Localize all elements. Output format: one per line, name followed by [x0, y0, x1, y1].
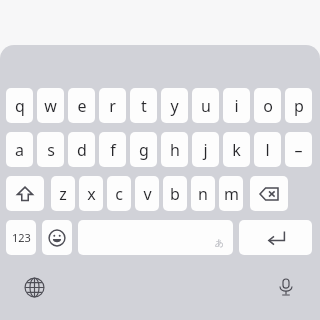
staticText: b	[170, 183, 180, 205]
button[interactable]: i	[223, 88, 250, 123]
button[interactable]: t	[130, 88, 157, 123]
button[interactable]: –	[285, 132, 312, 167]
staticText: g	[139, 139, 149, 161]
staticText: f	[110, 139, 116, 161]
button[interactable]: Backspace	[250, 176, 288, 211]
staticText: q	[15, 95, 25, 117]
button[interactable]: e	[68, 88, 95, 123]
staticText: m	[224, 183, 239, 205]
staticText: n	[198, 183, 208, 205]
button[interactable]: z	[51, 176, 75, 211]
button[interactable]: d	[68, 132, 95, 167]
staticText: z	[59, 183, 67, 205]
button[interactable]: y	[161, 88, 188, 123]
button[interactable]: Emoji	[42, 220, 72, 255]
button[interactable]: v	[135, 176, 159, 211]
button[interactable]: Voice input	[273, 274, 299, 300]
button[interactable]: k	[223, 132, 250, 167]
staticText: i	[234, 95, 239, 117]
button[interactable]: r	[99, 88, 126, 123]
button[interactable]: w	[37, 88, 64, 123]
staticText: o	[263, 95, 273, 117]
staticText: j	[203, 139, 208, 161]
staticText: v	[143, 183, 152, 205]
button[interactable]: o	[254, 88, 281, 123]
button[interactable]: q	[6, 88, 33, 123]
staticText: t	[141, 95, 147, 117]
button[interactable]: u	[192, 88, 219, 123]
staticText: u	[201, 95, 211, 117]
button[interactable]: m	[219, 176, 243, 211]
staticText: l	[265, 139, 270, 161]
staticText: w	[44, 95, 57, 117]
staticText: x	[87, 183, 96, 205]
button[interactable]: a	[6, 132, 33, 167]
staticText: r	[109, 95, 116, 117]
button[interactable]: h	[161, 132, 188, 167]
button[interactable]: あ	[78, 220, 233, 255]
staticText: d	[77, 139, 87, 161]
button[interactable]: Shift	[6, 176, 44, 211]
button[interactable]: n	[191, 176, 215, 211]
staticText: 123	[12, 230, 31, 245]
button[interactable]: b	[163, 176, 187, 211]
staticText: a	[15, 139, 24, 161]
staticText: y	[170, 95, 179, 117]
button[interactable]: g	[130, 132, 157, 167]
staticText: あ	[215, 237, 225, 248]
staticText: e	[77, 95, 87, 117]
button[interactable]: c	[107, 176, 131, 211]
button[interactable]: Enter	[239, 220, 312, 255]
staticText: k	[232, 139, 241, 161]
button[interactable]: s	[37, 132, 64, 167]
button[interactable]: Change language	[21, 274, 47, 300]
staticText: h	[170, 139, 180, 161]
staticText: p	[294, 95, 304, 117]
button[interactable]: x	[79, 176, 103, 211]
staticText: –	[294, 139, 303, 161]
staticText: c	[115, 183, 123, 205]
button[interactable]: l	[254, 132, 281, 167]
button[interactable]: f	[99, 132, 126, 167]
button[interactable]: j	[192, 132, 219, 167]
staticText: s	[47, 139, 55, 161]
button[interactable]: 123	[6, 220, 36, 255]
button[interactable]: p	[285, 88, 312, 123]
